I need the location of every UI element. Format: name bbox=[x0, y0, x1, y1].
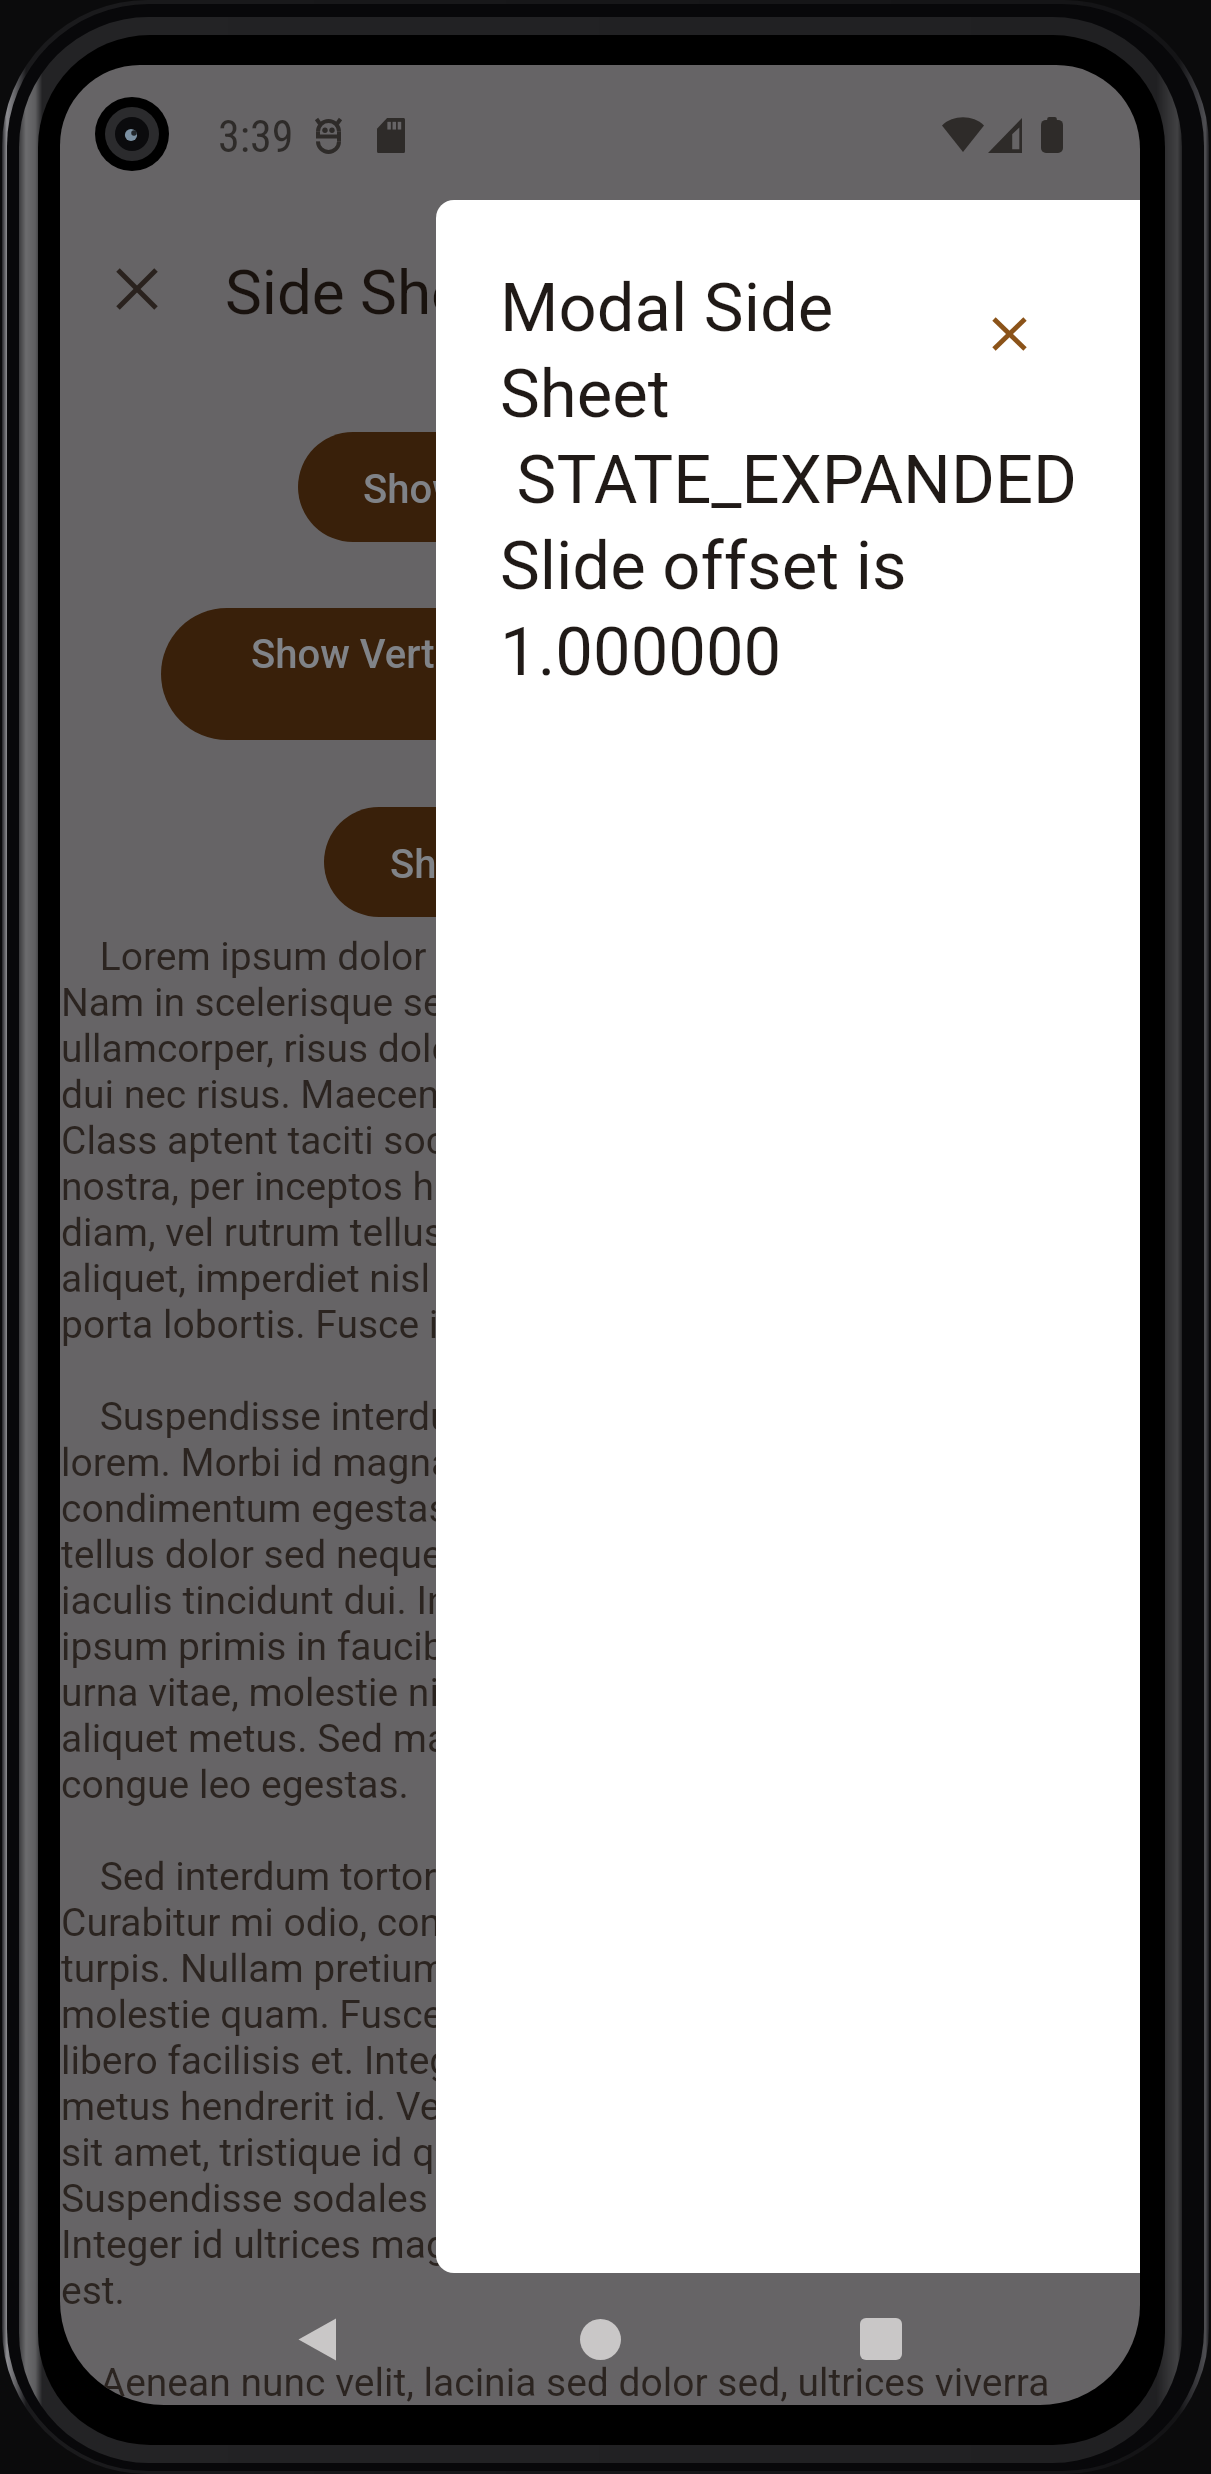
button[interactable]: Show Modal Side Sheet bbox=[298, 432, 902, 542]
staticText: Modal Side Sheet STATE_EXPANDED Slide of… bbox=[500, 269, 1077, 691]
staticText: Show Modal Side Sheet bbox=[363, 466, 785, 513]
staticText: Show Vertical Side Sheet bbox=[251, 631, 699, 678]
button[interactable]: Recents bbox=[821, 2279, 941, 2399]
button[interactable]: Close bbox=[83, 235, 191, 343]
staticText: Show Coplanar Side Sheet bbox=[390, 841, 861, 888]
button[interactable]: Home bbox=[540, 2279, 660, 2399]
button[interactable]: Back bbox=[256, 2279, 376, 2399]
button[interactable]: Close sheet bbox=[954, 279, 1064, 389]
button[interactable]: Show Vertical Side Sheet bbox=[161, 608, 1039, 740]
button[interactable]: Show Coplanar Side Sheet bbox=[324, 807, 875, 917]
staticText: 3:39 bbox=[218, 111, 294, 163]
staticText: Side Sheet bbox=[225, 256, 518, 329]
staticText: Lorem ipsum dolor sit amet, consectetur … bbox=[61, 934, 1121, 2405]
